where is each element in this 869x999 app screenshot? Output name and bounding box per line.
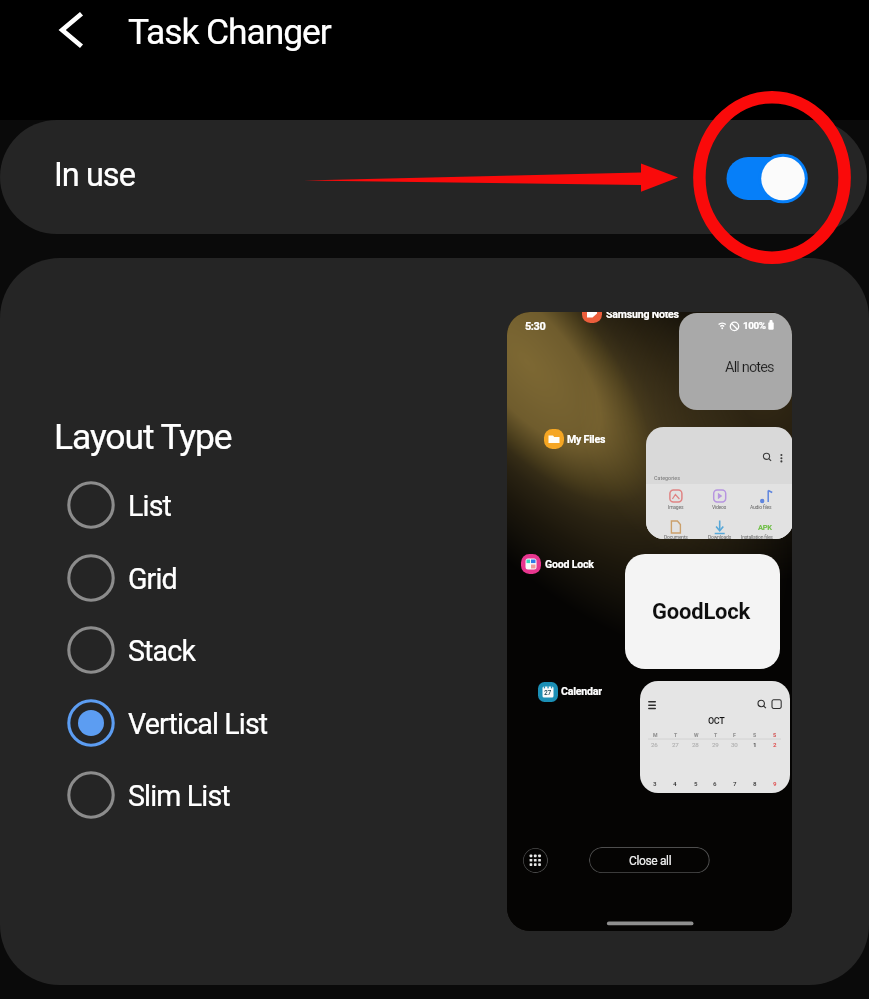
staticText: 3 xyxy=(653,780,657,787)
staticText: Categories xyxy=(654,475,680,481)
button[interactable]: OCT xyxy=(640,681,790,793)
staticText: S xyxy=(773,732,776,738)
staticText: Good Lock xyxy=(545,558,594,570)
staticText: In use xyxy=(54,156,135,194)
button[interactable]: List xyxy=(48,473,388,537)
staticText: 9 xyxy=(773,780,777,787)
button[interactable]: Vertical List xyxy=(48,691,388,755)
staticText: T xyxy=(714,732,718,738)
button[interactable]: Slim List xyxy=(48,763,388,827)
staticText: 27 xyxy=(672,741,679,748)
staticText: 29 xyxy=(712,741,719,748)
button[interactable]: All notes xyxy=(679,313,792,410)
staticText: Images xyxy=(668,504,684,510)
staticText: 27 xyxy=(544,689,551,697)
staticText: Stack xyxy=(128,634,196,668)
staticText: Calendar xyxy=(561,685,602,697)
staticText: All notes xyxy=(725,358,774,375)
staticText: Downloads xyxy=(708,534,732,539)
staticText: 26 xyxy=(651,741,658,748)
staticText: Layout Type xyxy=(54,416,232,457)
staticText: 8 xyxy=(753,780,757,787)
button[interactable]: Navigate up xyxy=(48,7,96,55)
staticText: T xyxy=(674,732,678,738)
staticText: Documents xyxy=(664,534,688,539)
staticText: 100% xyxy=(743,320,766,331)
staticText: Samsung Notes xyxy=(606,312,679,320)
button[interactable]: Close all xyxy=(589,847,710,873)
staticText: My Files xyxy=(567,433,606,445)
staticText: 6 xyxy=(713,780,717,787)
button[interactable]: Stack xyxy=(48,618,388,682)
staticText: OCT xyxy=(708,716,725,727)
staticText: Task Changer xyxy=(128,11,331,52)
staticText: M xyxy=(653,732,658,738)
staticText: F xyxy=(733,732,736,738)
staticText: 28 xyxy=(692,741,699,748)
staticText: 30 xyxy=(731,741,738,748)
staticText: Videos xyxy=(712,504,727,510)
staticText: Grid xyxy=(128,562,177,596)
staticText: W xyxy=(694,732,699,738)
staticText: Vertical List xyxy=(128,707,268,741)
button[interactable]: In use xyxy=(0,120,867,234)
staticText: List xyxy=(128,489,172,523)
staticText: 7 xyxy=(733,780,737,787)
staticText: S xyxy=(753,732,756,738)
staticText: 5:30 xyxy=(525,320,546,333)
staticText: GoodLock xyxy=(652,599,751,625)
staticText: 4 xyxy=(673,780,677,787)
staticText: Close all xyxy=(629,854,672,868)
staticText: 1 xyxy=(753,741,757,748)
button[interactable]: Categories xyxy=(646,427,792,539)
button[interactable]: GoodLock xyxy=(625,554,780,669)
staticText: 2 xyxy=(773,741,777,748)
staticText: Audio files xyxy=(750,504,772,510)
staticText: APK xyxy=(758,523,772,532)
button[interactable]: Grid xyxy=(48,546,388,610)
button[interactable]: App list xyxy=(523,848,548,873)
staticText: Installation files xyxy=(741,534,773,539)
staticText: Slim List xyxy=(128,779,230,813)
staticText: 5 xyxy=(694,780,698,787)
